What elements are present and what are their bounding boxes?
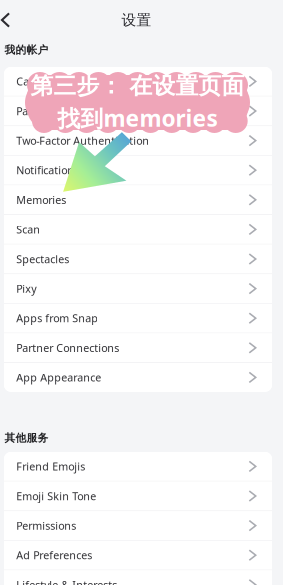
button[interactable]: Friend Emojis bbox=[4, 452, 272, 481]
staticText: Ad Preferences bbox=[16, 548, 92, 562]
button[interactable]: Card bbox=[4, 67, 272, 96]
button[interactable]: Permissions bbox=[4, 511, 272, 540]
staticText: Two-Factor Authentication bbox=[16, 133, 149, 148]
staticText: Apps from Snap bbox=[16, 311, 98, 325]
staticText: Emoji Skin Tone bbox=[16, 489, 96, 503]
staticText: Memories bbox=[16, 193, 66, 207]
button[interactable]: Partner Connections bbox=[4, 333, 272, 362]
button[interactable]: Spectacles bbox=[4, 245, 272, 273]
staticText: Scan bbox=[16, 222, 40, 236]
staticText: Password bbox=[16, 104, 63, 118]
staticText: Pixy bbox=[16, 281, 36, 296]
staticText: 找到memories bbox=[57, 103, 217, 133]
staticText: 我的帐户 bbox=[4, 43, 48, 57]
button[interactable]: Scan bbox=[4, 215, 272, 244]
staticText: 设置 bbox=[121, 11, 151, 29]
button[interactable]: Back bbox=[0, 3, 18, 37]
button[interactable]: Password bbox=[4, 97, 272, 125]
button[interactable]: Notifications bbox=[4, 156, 272, 185]
staticText: Permissions bbox=[16, 518, 76, 533]
button[interactable]: Ad Preferences bbox=[4, 541, 272, 570]
staticText: Lifestyle & Interests bbox=[16, 578, 117, 585]
staticText: 第三步： 在设置页面 bbox=[30, 72, 244, 100]
staticText: Partner Connections bbox=[16, 341, 119, 355]
staticText: Friend Emojis bbox=[16, 459, 85, 473]
button[interactable]: App Appearance bbox=[4, 363, 272, 392]
staticText: Notifications bbox=[16, 163, 79, 177]
button[interactable]: Apps from Snap bbox=[4, 304, 272, 333]
button[interactable]: Memories bbox=[4, 185, 272, 214]
staticText: 其他服务 bbox=[4, 431, 48, 445]
button[interactable]: Pixy bbox=[4, 274, 272, 303]
button[interactable]: Lifestyle & Interests bbox=[4, 570, 272, 585]
button[interactable]: Two-Factor Authentication bbox=[4, 126, 272, 155]
staticText: App Appearance bbox=[16, 370, 101, 384]
button[interactable]: Emoji Skin Tone bbox=[4, 482, 272, 510]
staticText: Spectacles bbox=[16, 252, 69, 266]
staticText: Card bbox=[16, 74, 40, 88]
